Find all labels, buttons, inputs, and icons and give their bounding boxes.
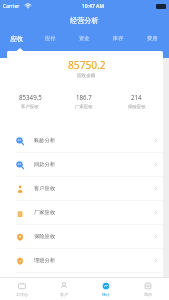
staticText: 经营分析 bbox=[70, 16, 99, 25]
staticText: 85349.5 bbox=[19, 93, 42, 101]
staticText: 工作台 bbox=[16, 292, 28, 297]
staticText: 85750.2 bbox=[68, 58, 106, 71]
button[interactable]: 回款分析 bbox=[0, 153, 163, 176]
staticText: 理赔分析 bbox=[34, 257, 56, 264]
staticText: 186.7 bbox=[76, 93, 92, 101]
button[interactable]: 库存 bbox=[101, 31, 135, 46]
button[interactable]: 214 bbox=[110, 93, 163, 110]
staticText: 厂家应收 bbox=[75, 104, 93, 110]
staticText: 客户应收 bbox=[21, 104, 39, 110]
staticText: 回款分析 bbox=[34, 161, 56, 168]
button[interactable]: 186.7 bbox=[57, 93, 110, 110]
staticText: 账龄分析 bbox=[34, 137, 56, 144]
staticText: 应收 bbox=[10, 35, 24, 43]
staticText: 保险应收 bbox=[34, 233, 56, 240]
staticText: 客户 bbox=[60, 292, 68, 297]
staticText: 我的 bbox=[144, 292, 152, 297]
staticText: 库存 bbox=[113, 35, 124, 42]
staticText: Carrier bbox=[3, 3, 20, 10]
staticText: 10:47 AM bbox=[82, 3, 104, 10]
button[interactable]: 客户 bbox=[43, 277, 85, 300]
staticText: 应收余额 bbox=[77, 73, 96, 79]
button[interactable]: 统计 bbox=[85, 277, 127, 300]
staticText: 厂家应收 bbox=[34, 209, 56, 216]
button[interactable]: 理赔分析 bbox=[0, 249, 163, 272]
staticText: 应付 bbox=[45, 35, 56, 42]
button[interactable]: 85349.5 bbox=[3, 93, 57, 110]
button[interactable]: 工作台 bbox=[0, 277, 43, 300]
button[interactable]: 费用 bbox=[135, 31, 169, 46]
button[interactable]: 我的 bbox=[127, 277, 169, 300]
button[interactable]: 保险应收 bbox=[0, 225, 163, 248]
staticText: 费用 bbox=[147, 35, 158, 42]
button[interactable]: 账龄分析 bbox=[0, 129, 163, 152]
staticText: 资金 bbox=[79, 35, 90, 42]
button[interactable]: 应付 bbox=[33, 31, 67, 46]
button[interactable]: 厂家应收 bbox=[0, 201, 163, 224]
staticText: 客户应收 bbox=[34, 185, 56, 192]
button[interactable]: 应收 bbox=[0, 31, 33, 46]
staticText: 保险应收 bbox=[128, 104, 146, 110]
button[interactable]: 客户应收 bbox=[0, 177, 163, 200]
staticText: 214 bbox=[131, 93, 142, 101]
staticText: 统计 bbox=[102, 292, 110, 297]
button[interactable]: 资金 bbox=[67, 31, 101, 46]
